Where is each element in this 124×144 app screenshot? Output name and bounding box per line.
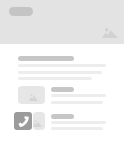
button[interactable] — [9, 7, 33, 16]
other: Image — [102, 28, 118, 38]
button[interactable] — [33, 112, 45, 130]
button[interactable] — [18, 86, 45, 104]
button[interactable]: Call — [14, 112, 32, 130]
